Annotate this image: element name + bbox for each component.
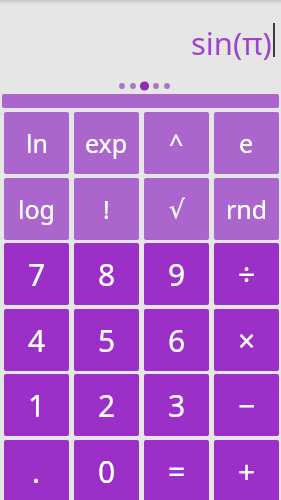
staticText: . — [32, 451, 41, 492]
button[interactable]: rnd — [214, 178, 279, 240]
staticText: 3 — [168, 385, 186, 426]
staticText: rnd — [226, 192, 268, 226]
button[interactable]: + — [214, 440, 279, 500]
button[interactable]: 5 — [74, 309, 139, 371]
button[interactable]: − — [214, 374, 279, 436]
staticText: × — [238, 320, 256, 361]
staticText: exp — [85, 126, 128, 160]
button[interactable]: 6 — [144, 309, 209, 371]
button[interactable]: 7 — [4, 243, 69, 305]
button[interactable]: 2 — [74, 374, 139, 436]
button[interactable]: e — [214, 112, 279, 174]
button[interactable]: ^ — [144, 112, 209, 174]
button[interactable]: × — [214, 309, 279, 371]
button[interactable]: 9 — [144, 243, 209, 305]
staticText: 9 — [168, 254, 186, 295]
button[interactable]: 3 — [144, 374, 209, 436]
staticText: ^ — [169, 126, 184, 160]
staticText: 4 — [28, 320, 46, 361]
button[interactable]: 0 — [74, 440, 139, 500]
staticText: √ — [169, 195, 185, 224]
staticText: 5 — [98, 320, 116, 361]
button[interactable]: ÷ — [214, 243, 279, 305]
staticText: e — [239, 126, 254, 160]
button[interactable]: 1 — [4, 374, 69, 436]
staticText: ! — [103, 192, 110, 226]
button[interactable]: = — [144, 440, 209, 500]
staticText: − — [238, 385, 256, 426]
button[interactable]: √ — [144, 178, 209, 240]
button[interactable]: ! — [74, 178, 139, 240]
button[interactable]: exp — [74, 112, 139, 174]
staticText: + — [238, 451, 256, 492]
staticText: 6 — [168, 320, 186, 361]
staticText: 1 — [28, 385, 46, 426]
button[interactable]: 4 — [4, 309, 69, 371]
staticText: 8 — [98, 254, 116, 295]
button[interactable]: ln — [4, 112, 69, 174]
button[interactable]: . — [4, 440, 69, 500]
button[interactable]: log — [4, 178, 69, 240]
staticText: = — [168, 451, 186, 492]
staticText: 2 — [98, 385, 116, 426]
staticText: log — [18, 192, 55, 226]
staticText: 7 — [28, 254, 46, 295]
button[interactable]: 8 — [74, 243, 139, 305]
staticText: 0 — [98, 451, 116, 492]
staticText: ÷ — [238, 254, 256, 295]
staticText: sin(π) — [191, 22, 272, 60]
staticText: ln — [26, 126, 48, 160]
